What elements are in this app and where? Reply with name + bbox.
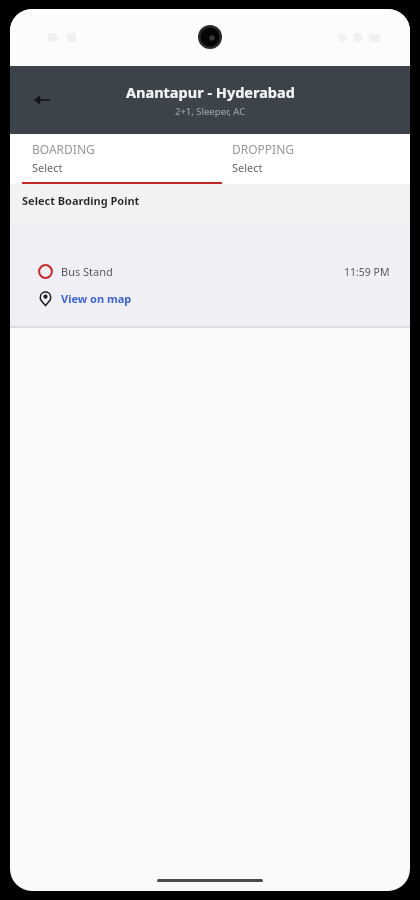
button[interactable]: DROPPING	[210, 134, 410, 184]
staticText: Select	[32, 160, 63, 175]
button[interactable]: BOARDING	[10, 134, 210, 184]
staticText: DROPPING	[232, 141, 295, 157]
staticText: Select	[232, 160, 263, 175]
staticText: 2+1, Sleeper, AC	[175, 105, 246, 118]
staticText: 11:59 PM	[344, 265, 390, 279]
button[interactable]: View on map	[38, 291, 132, 306]
staticText: BOARDING	[32, 141, 95, 157]
button[interactable]: Back	[20, 78, 64, 122]
button[interactable]: Bus Stand	[10, 224, 410, 328]
staticText: Bus Stand	[61, 264, 113, 279]
staticText: View on map	[61, 291, 132, 306]
staticText: Select Boarding Point	[22, 193, 140, 208]
staticText: Anantapur - Hyderabad	[126, 82, 295, 102]
